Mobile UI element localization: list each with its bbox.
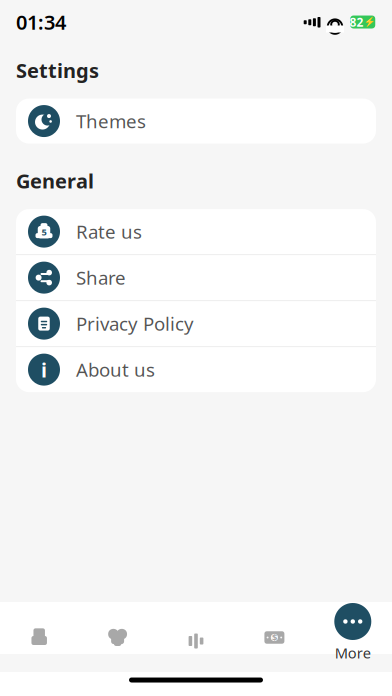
button[interactable]: Themes (16, 99, 376, 144)
staticText: Privacy Policy (76, 311, 194, 336)
button[interactable]: Favorites (78, 611, 157, 663)
staticText: About us (76, 357, 155, 382)
staticText: Settings (16, 57, 99, 84)
staticText: Share (76, 265, 126, 290)
staticText: ⚡ (364, 17, 376, 27)
button[interactable]: 5 (16, 209, 376, 254)
staticText: Rate us (76, 219, 142, 244)
staticText: 01:34 (16, 9, 66, 35)
button[interactable]: More (314, 602, 392, 673)
staticText: More (335, 643, 371, 662)
button[interactable]: i (16, 347, 376, 392)
staticText: 82 (349, 14, 363, 30)
staticText: General (16, 168, 94, 194)
button[interactable]: Share (16, 255, 376, 300)
staticText: $ (272, 631, 277, 644)
staticText: Themes (76, 109, 146, 133)
button[interactable]: Privacy Policy (16, 301, 376, 346)
staticText: 5 (41, 226, 46, 238)
button[interactable]: Statistics (157, 611, 235, 663)
button[interactable]: Budget (235, 611, 314, 663)
button[interactable]: Home (0, 611, 78, 663)
staticText: i (41, 356, 47, 383)
